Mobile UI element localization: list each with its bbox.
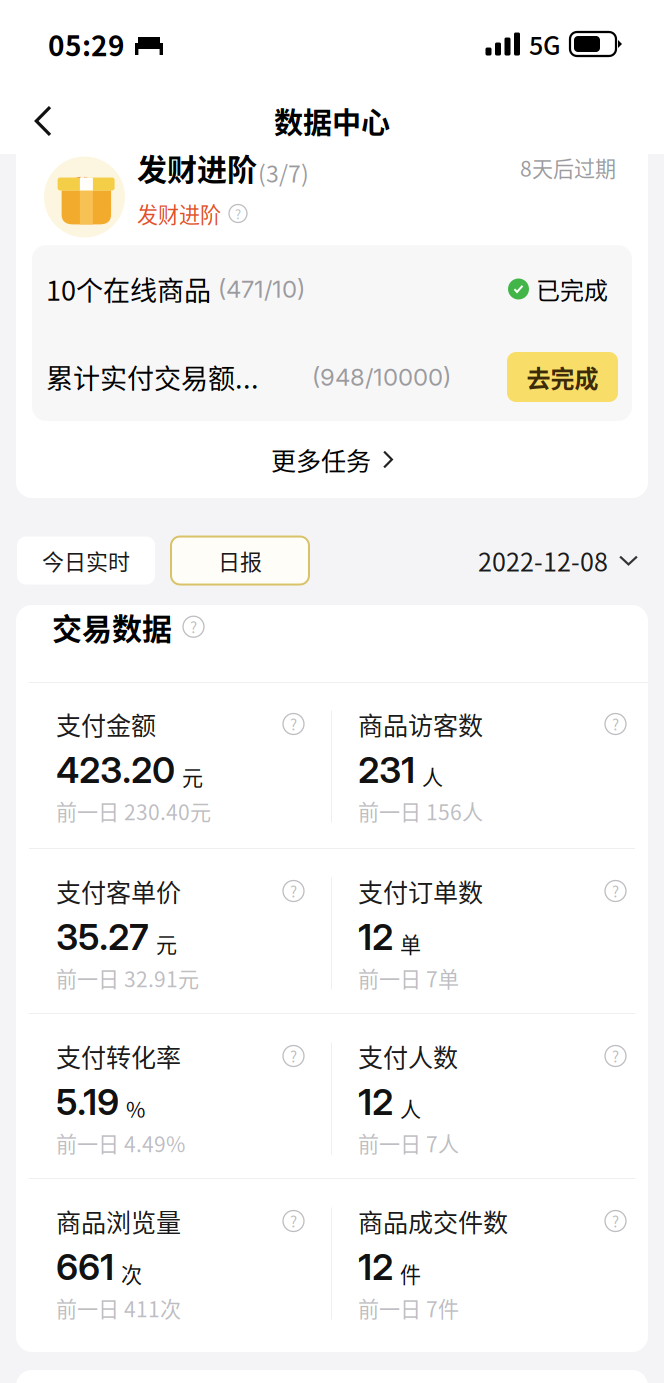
staticText: 12 <box>358 1080 393 1124</box>
staticText: 5G <box>529 26 561 62</box>
staticText: ? <box>290 713 297 735</box>
staticText: 元 <box>156 928 177 959</box>
staticText: 支付人数 <box>358 1038 458 1074</box>
staticText: 12 <box>358 915 393 959</box>
staticText: 今日实时 <box>42 545 130 576</box>
staticText: 交易数据 <box>52 605 172 648</box>
staticText: 件 <box>400 1258 421 1289</box>
staticText: 商品成交件数 <box>358 1203 508 1239</box>
staticText: 已完成 <box>536 272 608 306</box>
staticText: (3/7) <box>258 156 309 189</box>
staticText: 单 <box>400 928 421 959</box>
staticText: 前一日 7人 <box>358 1128 459 1158</box>
staticText: 去完成 <box>526 360 598 394</box>
staticText: ? <box>290 1045 297 1067</box>
staticText: 数据中心 <box>274 100 390 142</box>
staticText: 人 <box>400 1093 421 1124</box>
button[interactable]: 更多任务 <box>16 421 648 498</box>
staticText: ? <box>612 1210 619 1232</box>
staticText: ? <box>612 1045 619 1067</box>
staticText: ? <box>612 880 619 902</box>
staticText: 支付转化率 <box>56 1038 181 1074</box>
staticText: 35.27 <box>56 915 149 959</box>
button[interactable]: 10个在线商品 <box>32 245 632 333</box>
staticText: 支付客单价 <box>56 873 181 909</box>
staticText: 发财进阶 <box>137 198 221 229</box>
staticText: 前一日 7件 <box>358 1293 459 1323</box>
staticText: 5.19 <box>56 1080 119 1124</box>
staticText: 前一日 230.40元 <box>56 796 211 826</box>
staticText: 10个在线商品 <box>46 269 211 309</box>
staticText: (948/10000) <box>312 362 451 391</box>
staticText: 商品访客数 <box>358 706 483 742</box>
staticText: 8天后过期 <box>520 152 616 183</box>
staticText: 发财进阶 <box>137 146 257 189</box>
staticText: 人 <box>422 761 443 792</box>
button[interactable]: 2022-12-08 <box>478 542 638 579</box>
staticText: 支付金额 <box>56 706 156 742</box>
staticText: ? <box>290 1210 297 1232</box>
staticText: 元 <box>182 761 203 792</box>
button[interactable]: 累计实付交易额... <box>32 333 632 421</box>
staticText: ? <box>290 880 297 902</box>
staticText: 更多任务 <box>271 441 371 478</box>
button[interactable]: 返回 <box>13 93 73 149</box>
staticText: 前一日 156人 <box>358 796 483 826</box>
staticText: 前一日 7单 <box>358 963 459 993</box>
staticText: 423.20 <box>56 748 175 792</box>
staticText: 次 <box>121 1258 142 1289</box>
button[interactable]: 日报 <box>171 536 309 584</box>
staticText: 前一日 411次 <box>56 1293 181 1323</box>
staticText: 231 <box>358 748 415 792</box>
staticText: 12 <box>358 1245 393 1289</box>
staticText: % <box>126 1093 145 1124</box>
staticText: 累计实付交易额... <box>46 357 259 397</box>
staticText: 05:29 <box>48 24 125 64</box>
staticText: 2022-12-08 <box>478 542 608 579</box>
staticText: 前一日 4.49% <box>56 1128 185 1158</box>
button[interactable]: 今日实时 <box>17 536 155 584</box>
staticText: 日报 <box>218 545 262 576</box>
staticText: 支付订单数 <box>358 873 483 909</box>
staticText: ? <box>612 713 619 735</box>
staticText: 661 <box>56 1245 114 1289</box>
staticText: ? <box>190 616 197 638</box>
staticText: 前一日 32.91元 <box>56 963 199 993</box>
staticText: ? <box>235 204 241 223</box>
staticText: 商品浏览量 <box>56 1203 181 1239</box>
staticText: (471/10) <box>211 274 305 303</box>
